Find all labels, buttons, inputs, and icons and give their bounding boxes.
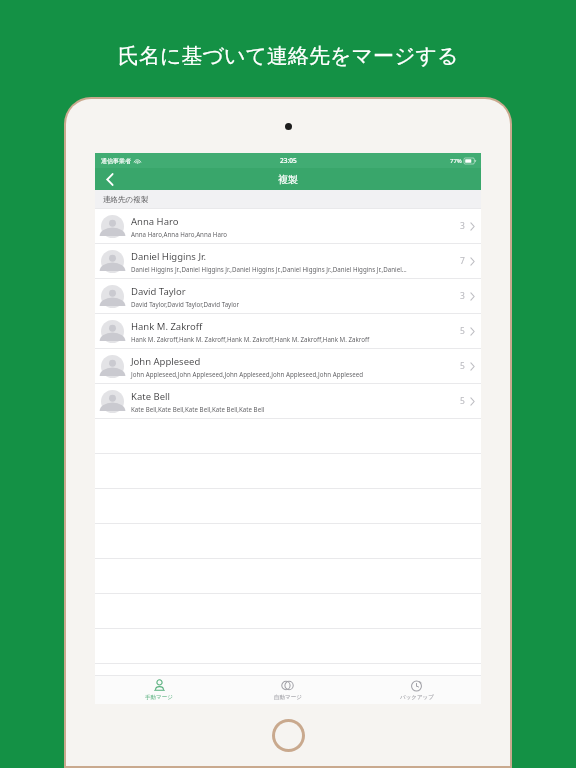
button[interactable]: Hank M. Zakroff [95,314,481,348]
staticText: 複製 [278,173,298,186]
staticText: 通信事業者 [101,157,131,165]
staticText: Kate Bell [131,390,170,403]
staticText: 3 [460,290,465,302]
staticText: 23:05 [280,156,297,165]
staticText: 7 [460,255,465,267]
staticText: David Taylor [131,285,186,298]
button[interactable]: Daniel Higgins Jr. [95,244,481,278]
staticText: 手動マージ [145,694,173,701]
staticText: Hank M. Zakroff [131,320,203,333]
button[interactable]: Kate Bell [95,384,481,418]
button[interactable]: John Appleseed [95,349,481,383]
button[interactable]: 手動マージ [95,676,223,704]
staticText: 5 [460,360,465,372]
button[interactable]: Anna Haro [95,209,481,243]
staticText: Hank M. Zakroff,Hank M. Zakroff,Hank M. … [131,335,370,343]
staticText: Anna Haro,Anna Haro,Anna Haro [131,230,228,238]
staticText: John Appleseed [131,355,201,368]
staticText: バックアップ [400,694,434,701]
button[interactable]: Back [95,168,125,190]
staticText: 77% [450,157,462,165]
button[interactable]: Home [275,722,302,749]
staticText: Daniel Higgins Jr.,Daniel Higgins Jr.,Da… [131,265,407,273]
staticText: Daniel Higgins Jr. [131,250,206,263]
staticText: 5 [460,325,465,337]
staticText: Anna Haro [131,215,179,228]
staticText: David Taylor,David Taylor,David Taylor [131,300,240,308]
staticText: 連絡先の複製 [103,195,149,204]
staticText: 3 [460,220,465,232]
staticText: 5 [460,395,465,407]
staticText: John Appleseed,John Appleseed,John Apple… [131,370,364,378]
staticText: 氏名に基づいて連絡先をマージする [118,43,459,69]
staticText: Kate Bell,Kate Bell,Kate Bell,Kate Bell,… [131,405,265,413]
button[interactable]: 自動マージ [223,676,352,704]
button[interactable]: David Taylor [95,279,481,313]
staticText: 自動マージ [274,694,302,701]
button[interactable]: バックアップ [352,676,481,704]
